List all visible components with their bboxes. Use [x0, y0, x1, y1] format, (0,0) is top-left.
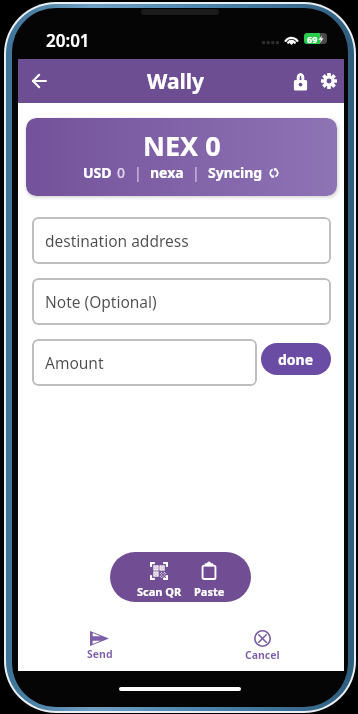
staticText: done [278, 350, 314, 369]
button[interactable]: Scan QR [135, 552, 183, 602]
staticText: Cancel [245, 648, 280, 662]
staticText: NEX 0 [143, 127, 221, 164]
button[interactable]: Send [57, 631, 142, 661]
staticText: destination address [45, 230, 189, 251]
button[interactable]: Paste [193, 552, 225, 602]
staticText: nexa [150, 163, 184, 182]
staticText: Paste [194, 584, 225, 599]
staticText: Wally [147, 67, 204, 96]
staticText: 0 [117, 163, 126, 182]
staticText: Amount [45, 352, 104, 373]
staticText: USD [83, 163, 112, 182]
button[interactable]: NEX 0 [26, 118, 337, 196]
button[interactable]: Back [22, 64, 56, 98]
staticText: 69 [307, 33, 318, 44]
button[interactable]: Cancel [220, 630, 305, 662]
staticText: | [192, 163, 200, 182]
staticText: 20:01 [46, 29, 90, 52]
button[interactable]: Note (Optional) [32, 278, 331, 325]
button[interactable]: Lock [284, 65, 316, 97]
staticText: Send [87, 647, 113, 661]
staticText: Scan QR [137, 584, 182, 599]
staticText: Note (Optional) [45, 291, 157, 312]
staticText: | [134, 163, 142, 182]
button[interactable]: done [261, 343, 331, 375]
button[interactable]: Amount [32, 339, 257, 386]
button[interactable]: Settings [313, 65, 345, 97]
staticText: Syncing [208, 163, 263, 182]
button[interactable]: destination address [32, 217, 331, 264]
